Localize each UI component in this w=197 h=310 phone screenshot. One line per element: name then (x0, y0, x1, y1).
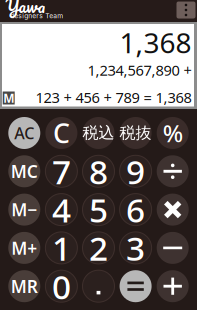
staticText: 6 (126, 187, 145, 232)
staticText: 税込 (82, 123, 114, 143)
staticText: 4 (52, 187, 71, 232)
button[interactable]: 2 (82, 232, 114, 264)
staticText: M (3, 90, 14, 106)
staticText: M+ (11, 236, 37, 259)
button[interactable]: Clear (45, 117, 77, 149)
staticText: M− (11, 198, 37, 221)
staticText: MC (11, 160, 38, 183)
staticText: AC (14, 122, 34, 144)
button[interactable]: 6 (120, 194, 152, 226)
button[interactable]: Memory recall (8, 270, 40, 302)
button[interactable]: Decimal point (82, 270, 114, 302)
button[interactable]: Equals (120, 270, 152, 302)
staticText: 7 (52, 149, 71, 193)
staticText: 123 + 456 + 789 = 1,368 (35, 87, 191, 107)
button[interactable]: 1 (45, 232, 77, 264)
staticText: 3 (126, 226, 145, 270)
staticText: % (163, 117, 183, 149)
button[interactable]: Tax included (82, 117, 114, 149)
staticText: 9 (126, 149, 145, 193)
button[interactable]: 0 (45, 270, 77, 302)
staticText: 1 (52, 226, 71, 270)
staticText: MR (11, 275, 38, 298)
staticText: 2 (89, 226, 108, 270)
staticText: 1,368 (119, 24, 191, 61)
button[interactable]: Memory clear (8, 155, 40, 187)
button[interactable]: Tax excluded (120, 117, 152, 149)
button[interactable]: Percent (157, 117, 189, 149)
button[interactable]: 3 (120, 232, 152, 264)
button[interactable]: Add (157, 270, 189, 302)
staticText: 1,234,567,890 + (87, 60, 191, 80)
staticText: 0 (52, 264, 71, 308)
staticText: 8 (89, 149, 108, 193)
staticText: 5 (89, 187, 108, 232)
button[interactable]: 7 (45, 155, 77, 187)
button[interactable]: More options (176, 1, 195, 18)
staticText: 税抜 (120, 123, 152, 143)
button[interactable]: Divide (157, 155, 189, 187)
button[interactable]: 9 (120, 155, 152, 187)
button[interactable]: Memory subtract (8, 194, 40, 226)
button[interactable]: 4 (45, 194, 77, 226)
staticText: designers Team (10, 12, 63, 20)
button[interactable]: 5 (82, 194, 114, 226)
staticText: C (53, 115, 70, 151)
button[interactable]: Memory add (8, 232, 40, 264)
staticText: Yawa (5, 0, 44, 20)
button[interactable]: Subtract (157, 232, 189, 264)
button[interactable]: Multiply (157, 194, 189, 226)
button[interactable]: 8 (82, 155, 114, 187)
button[interactable]: All clear (8, 117, 40, 149)
